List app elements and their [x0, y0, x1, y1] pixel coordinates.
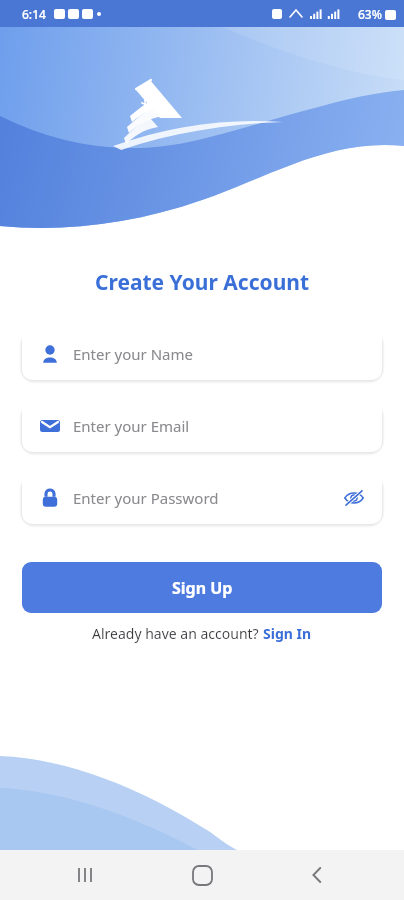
button[interactable]: Back: [289, 850, 345, 900]
button[interactable]: Sign Up: [22, 562, 382, 613]
button[interactable]: Enter your Password: [22, 472, 382, 524]
button[interactable]: Enter your Name: [22, 328, 382, 380]
staticText: Enter your Name: [73, 344, 364, 364]
staticText: Already have an account?: [92, 624, 263, 643]
staticText: Enter your Email: [73, 416, 364, 436]
staticText: 6:14: [22, 6, 46, 22]
button[interactable]: Enter your Email: [22, 400, 382, 452]
button[interactable]: Home: [174, 850, 230, 900]
staticText: Enter your Password: [73, 488, 334, 508]
button[interactable]: Sign In: [263, 624, 312, 643]
button[interactable]: Show password: [334, 478, 374, 518]
staticText: Create Your Account: [0, 268, 404, 297]
staticText: Sign In: [263, 624, 312, 643]
staticText: 63%: [358, 6, 382, 22]
button[interactable]: Recent apps: [59, 850, 115, 900]
staticText: Sign Up: [172, 577, 233, 599]
